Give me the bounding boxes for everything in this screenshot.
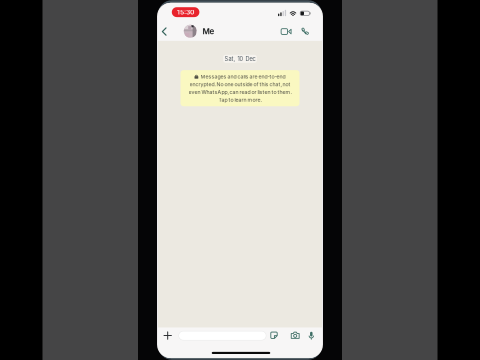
staticText: Me xyxy=(202,26,214,36)
button[interactable]: Back xyxy=(158,23,171,41)
button[interactable]: Voice message xyxy=(305,329,317,341)
button[interactable]: Camera xyxy=(289,329,301,341)
staticText: Sat, 10 Dec xyxy=(224,55,255,62)
staticText: 15:30 xyxy=(177,8,194,16)
button[interactable]: Me xyxy=(184,25,236,38)
staticText: even WhatsApp, can read or listen to the… xyxy=(188,89,291,95)
staticText: Tap to learn more. xyxy=(218,97,261,103)
staticText: Messages and calls are end-to-end xyxy=(200,73,285,80)
button[interactable]: Messages and calls are end-to-end xyxy=(180,70,299,106)
button[interactable]: Stickers xyxy=(268,329,280,341)
staticText: encrypted. No one outside of this chat, … xyxy=(189,81,290,87)
button[interactable]: Voice call xyxy=(297,24,313,40)
button[interactable]: Attach xyxy=(161,329,175,343)
button[interactable]: Video call xyxy=(278,24,294,40)
